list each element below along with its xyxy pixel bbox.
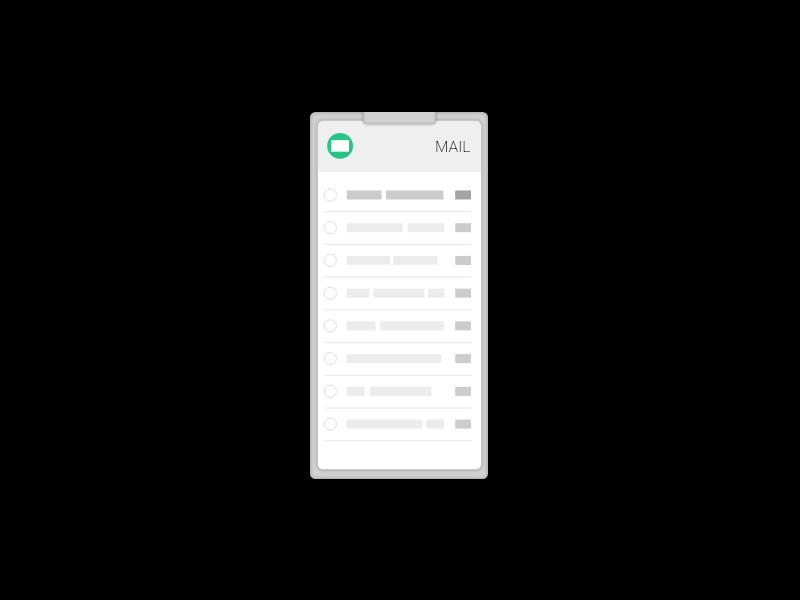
button[interactable]: Mail — [327, 132, 355, 160]
button[interactable]: Message — [318, 311, 481, 344]
button[interactable]: Message — [318, 410, 481, 443]
button[interactable]: Message — [318, 245, 481, 278]
button[interactable]: Message — [318, 278, 481, 311]
button[interactable]: Message — [318, 212, 481, 245]
button[interactable]: Message — [318, 344, 481, 377]
button[interactable]: Message — [318, 377, 481, 410]
button[interactable]: MAIL — [435, 138, 471, 156]
button[interactable]: Unread message — [318, 179, 481, 212]
